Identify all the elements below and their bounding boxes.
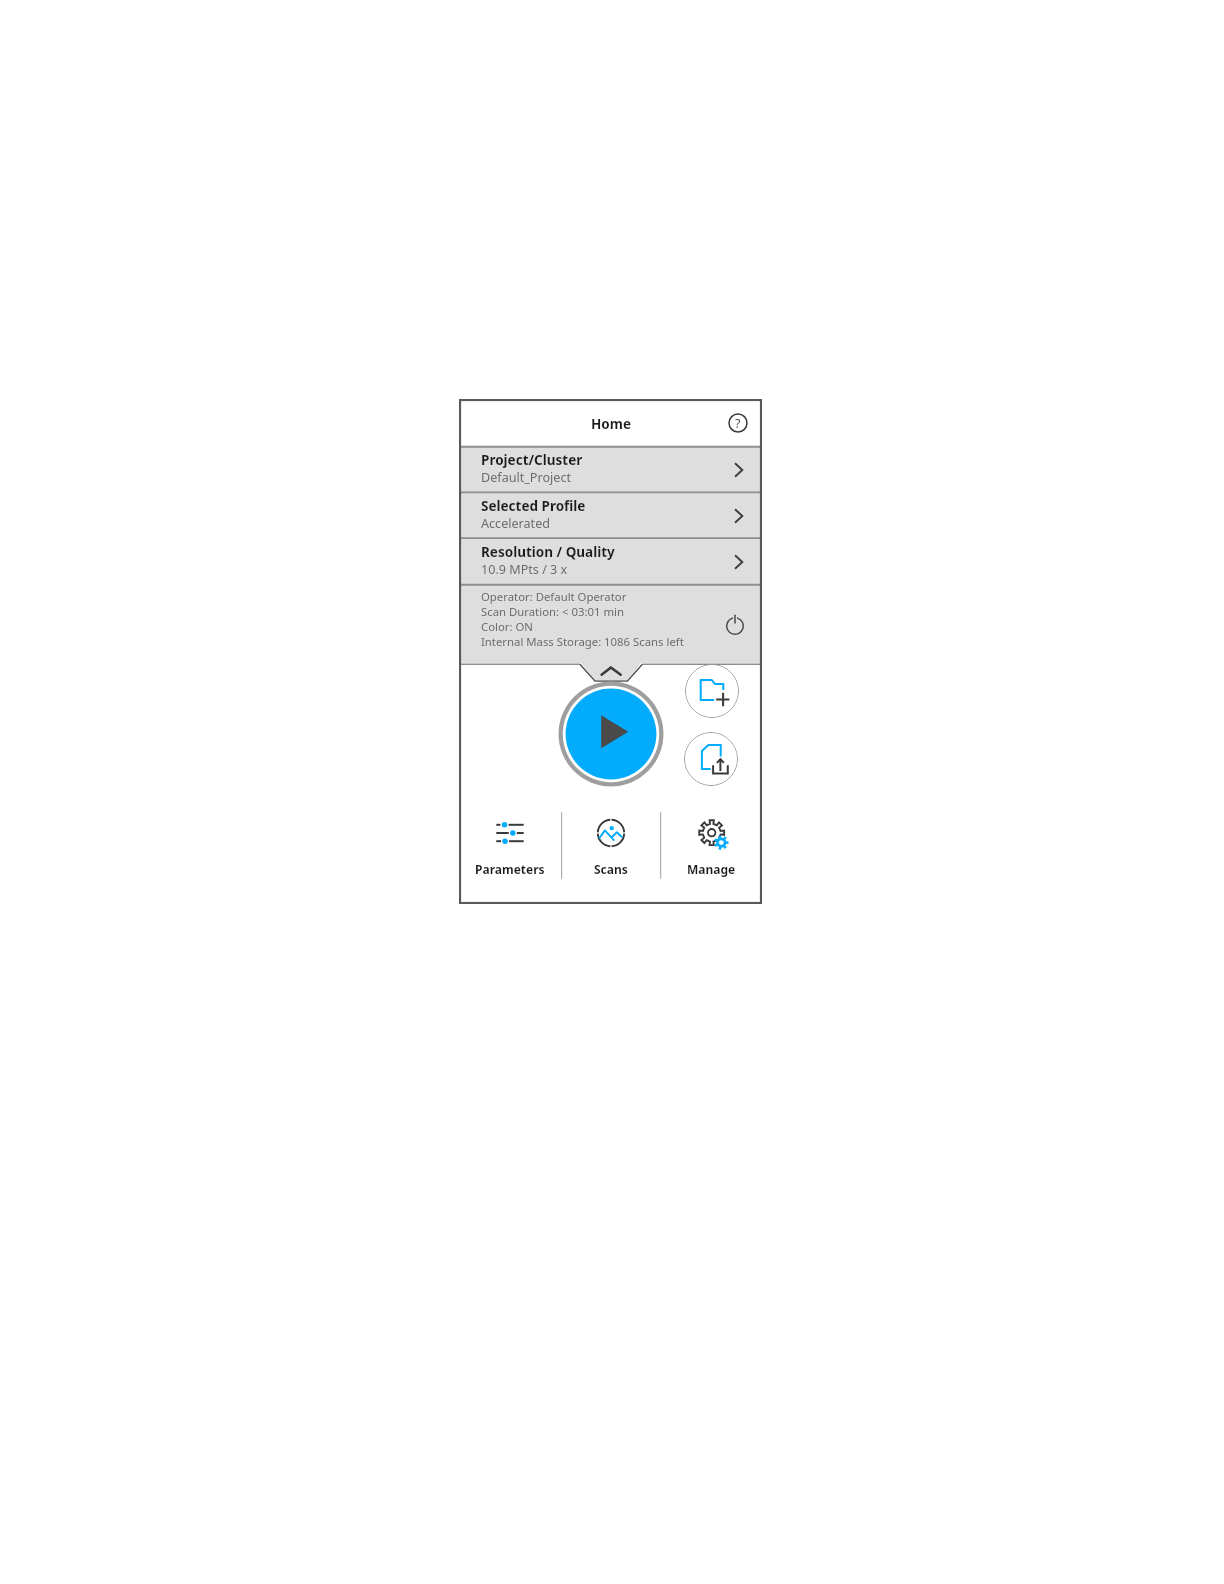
button[interactable]: Manage xyxy=(661,802,762,888)
staticText: Parameters xyxy=(475,861,545,877)
staticText: Resolution / Quality xyxy=(481,543,615,561)
staticText: Project/Cluster xyxy=(481,451,583,469)
staticText: Color: ON xyxy=(481,619,533,634)
staticText: 10.9 MPts / 3 x xyxy=(481,561,568,578)
staticText: Selected Profile xyxy=(481,497,586,515)
button[interactable]: Selected Profile xyxy=(459,493,762,538)
button[interactable]: Scans xyxy=(560,802,661,888)
staticText: Manage xyxy=(687,861,736,877)
staticText: Operator: Default Operator xyxy=(481,589,627,604)
staticText: Default_Project xyxy=(481,469,571,486)
button[interactable]: Project/Cluster xyxy=(459,447,762,492)
button[interactable]: Parameters xyxy=(459,802,560,888)
staticText: Scan Duration: < 03:01 min xyxy=(481,604,624,619)
staticText: ? xyxy=(735,415,741,432)
button[interactable]: New project xyxy=(685,664,739,718)
staticText: Internal Mass Storage: 1086 Scans left xyxy=(481,634,684,649)
button[interactable]: Help xyxy=(727,412,749,434)
staticText: Home xyxy=(591,415,631,433)
button[interactable]: Power xyxy=(724,615,746,637)
button[interactable]: Resolution / Quality xyxy=(459,539,762,584)
staticText: Accelerated xyxy=(481,515,551,532)
staticText: Scans xyxy=(594,861,628,877)
button[interactable]: Start scan xyxy=(558,681,664,787)
button[interactable]: Export scan xyxy=(684,732,738,786)
